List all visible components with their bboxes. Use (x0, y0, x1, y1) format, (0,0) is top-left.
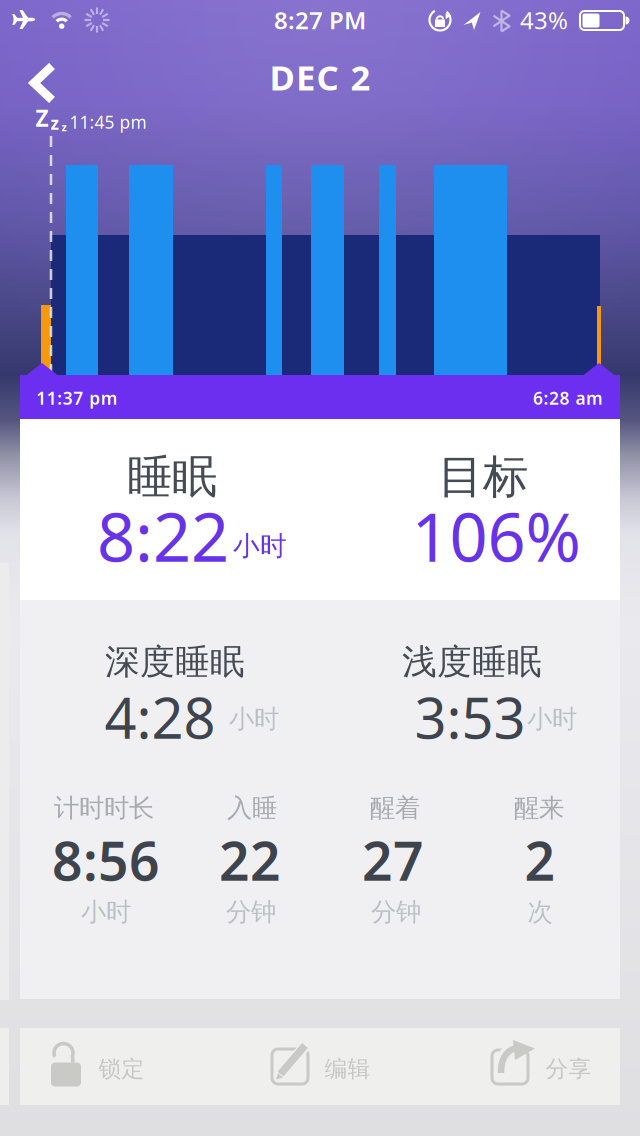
staticText: 小时 (527, 703, 577, 734)
staticText: 小时 (81, 896, 131, 927)
staticText: 8:56 (52, 825, 160, 895)
staticText: 27 (362, 825, 424, 895)
button[interactable]: 锁定 (40, 1028, 155, 1105)
staticText: 8:27 PM (274, 4, 366, 36)
staticText: 编辑 (324, 1055, 370, 1083)
staticText: 深度睡眠 (105, 641, 245, 683)
staticText: 分钟 (226, 896, 276, 927)
staticText: 小时 (233, 530, 287, 562)
staticText: z (61, 120, 66, 134)
staticText: 3:53 (414, 680, 525, 754)
staticText: 醒来 (514, 792, 564, 823)
staticText: 分钟 (371, 896, 421, 927)
button[interactable]: Back (23, 61, 63, 105)
staticText: 106% (411, 492, 580, 580)
staticText: 计时时长 (54, 792, 154, 823)
staticText: DEC 2 (269, 54, 370, 100)
button[interactable]: 编辑 (260, 1028, 380, 1105)
staticText: 4:28 (104, 680, 215, 754)
staticText: 43% (520, 4, 568, 36)
staticText: 8:22 (97, 492, 229, 580)
staticText: 11:45 pm (69, 110, 146, 133)
staticText: 分享 (545, 1055, 591, 1083)
staticText: 22 (219, 825, 281, 895)
staticText: 小时 (229, 703, 279, 734)
staticText: 6:28 am (533, 386, 603, 409)
staticText: 目标 (438, 449, 528, 505)
staticText: 锁定 (98, 1055, 144, 1083)
staticText: 睡眠 (127, 449, 217, 505)
staticText: 浅度睡眠 (402, 641, 542, 683)
staticText: 2 (524, 825, 555, 895)
staticText: 入睡 (227, 792, 277, 823)
staticText: 次 (527, 896, 552, 927)
staticText: 11:37 pm (36, 386, 118, 409)
staticText: z (50, 111, 59, 134)
staticText: 醒着 (370, 792, 420, 823)
button[interactable]: 分享 (480, 1028, 605, 1105)
staticText: Z (35, 103, 48, 133)
